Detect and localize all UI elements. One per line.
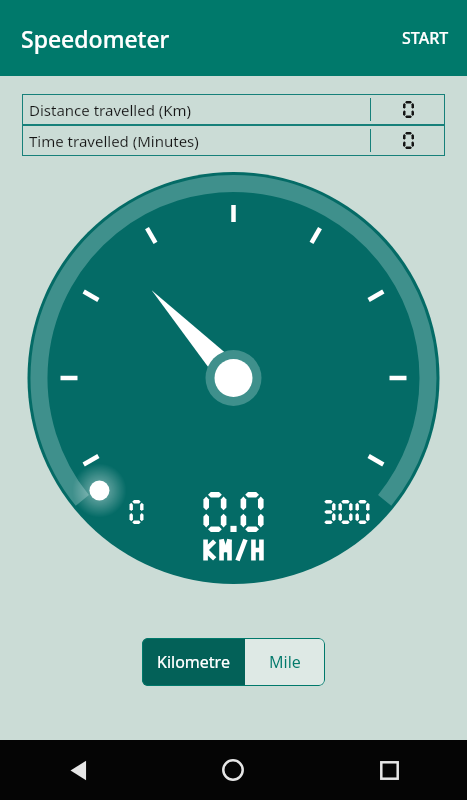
staticText: START bbox=[402, 27, 449, 49]
staticText: Kilometre bbox=[157, 651, 230, 673]
staticText: Time travelled (Minutes) bbox=[29, 131, 370, 151]
button[interactable]: Mile bbox=[245, 638, 325, 686]
button[interactable]: START bbox=[384, 11, 467, 65]
button[interactable]: Time travelled (Minutes) bbox=[22, 125, 445, 156]
button[interactable]: Back bbox=[54, 746, 102, 794]
staticText: Distance travelled (Km) bbox=[29, 100, 370, 120]
button[interactable]: Recents bbox=[365, 746, 413, 794]
staticText: Speedometer bbox=[21, 23, 170, 54]
button[interactable]: Distance travelled (Km) bbox=[22, 94, 445, 125]
staticText: Mile bbox=[269, 651, 301, 673]
button[interactable]: Kilometre bbox=[142, 638, 245, 686]
button[interactable]: Home bbox=[209, 746, 257, 794]
